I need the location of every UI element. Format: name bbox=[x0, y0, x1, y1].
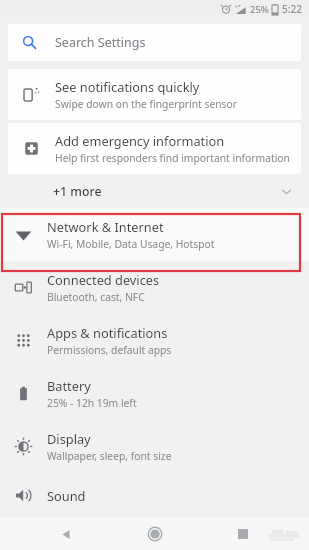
button[interactable]: Connected devices bbox=[0, 261, 309, 314]
staticText: See notifications quickly bbox=[55, 78, 200, 95]
staticText: Add emergency information bbox=[55, 132, 225, 149]
staticText: Search Settings bbox=[55, 34, 146, 51]
button[interactable]: Search Settings bbox=[8, 24, 301, 61]
button[interactable]: Apps & notifications bbox=[0, 314, 309, 367]
button[interactable]: Network & Internet bbox=[0, 208, 309, 261]
staticText: Permissions, default apps bbox=[47, 343, 172, 357]
button[interactable]: Sound bbox=[0, 473, 309, 517]
staticText: Bluetooth, cast, NFC bbox=[47, 290, 145, 304]
staticText: Apps & notifications bbox=[47, 324, 168, 341]
staticText: Wi-Fi, Mobile, Data Usage, Hotspot bbox=[47, 237, 215, 251]
button[interactable]: Back bbox=[56, 524, 76, 544]
staticText: Help first responders find important inf… bbox=[55, 151, 290, 165]
staticText: Wallpaper, sleep, font size bbox=[47, 449, 172, 463]
staticText: Display bbox=[47, 430, 91, 447]
button[interactable]: Add emergency information bbox=[8, 123, 301, 174]
staticText: Network & Internet bbox=[47, 218, 164, 235]
staticText: 5:22 bbox=[282, 2, 302, 16]
staticText: 25% bbox=[250, 3, 269, 16]
button[interactable]: Recent apps bbox=[233, 524, 253, 544]
staticText: Sound bbox=[47, 487, 86, 504]
button[interactable]: See notifications quickly bbox=[8, 69, 301, 120]
staticText: +1 more bbox=[53, 183, 102, 200]
staticText: Battery bbox=[47, 377, 91, 394]
button[interactable]: Home bbox=[144, 523, 166, 545]
staticText: Connected devices bbox=[47, 271, 160, 288]
button[interactable]: Battery bbox=[0, 367, 309, 420]
button[interactable]: +1 more bbox=[0, 174, 309, 208]
button[interactable]: Display bbox=[0, 420, 309, 473]
staticText: 25% - 12h 19m left bbox=[47, 396, 137, 410]
staticText: Swipe down on the fingerprint sensor bbox=[55, 97, 238, 111]
